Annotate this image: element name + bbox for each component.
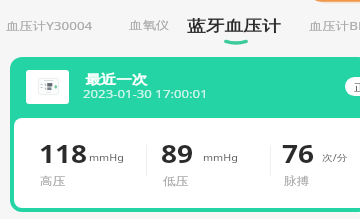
button[interactable]: 血压计Y30004 [0,4,96,46]
staticText: 脉搏 [284,174,309,188]
staticText: 最近一次 [85,71,147,87]
button[interactable]: 测量结果 正常 [345,77,360,96]
staticText: mmHg [203,151,239,163]
staticText: 次/分 [322,151,348,163]
button[interactable]: 蓝牙血压计 [177,4,291,46]
staticText: 血压计BM [309,18,360,33]
staticText: 血氧仪 [129,18,169,32]
staticText: mmHg [89,151,125,163]
button[interactable]: 血压计BM [299,4,360,46]
staticText: 低压 [163,174,188,188]
button[interactable]: 血氧仪 [119,4,219,46]
staticText: 高压 [40,174,65,188]
staticText: 血压计Y30004 [6,18,93,33]
staticText: 76 [282,136,314,170]
staticText: 蓝牙血压计 [187,17,281,36]
staticText: 2023-01-30 17:00:01 [83,86,208,101]
button[interactable]: 最近一次 [10,57,360,212]
staticText: 118 [39,136,87,170]
staticText: 89 [161,136,193,170]
staticText: 正常 [354,81,360,94]
